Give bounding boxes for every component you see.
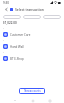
- staticText: Customer Care: [10, 33, 31, 37]
- button[interactable]: Customer Care: [0, 30, 64, 39]
- button[interactable]: Home: [30, 98, 35, 103]
- staticText: 9:30: [3, 1, 9, 5]
- staticText: $1,022.00: [3, 21, 17, 25]
- staticText: BT E-Shop: [10, 57, 24, 61]
- button[interactable]: Recent apps: [47, 98, 52, 103]
- staticText: •: [3, 51, 4, 54]
- button[interactable]: Newaccounts: [19, 88, 45, 94]
- button[interactable]: Describe: [23, 15, 41, 19]
- button[interactable]: Back: [3, 6, 9, 12]
- staticText: •: [3, 27, 4, 30]
- staticText: Services: [7, 16, 17, 19]
- staticText: Hand Wall: [10, 45, 24, 49]
- staticText: Describe: [27, 16, 37, 19]
- button[interactable]: BT E-Shop: [0, 54, 64, 63]
- staticText: Orders: [48, 16, 56, 19]
- staticText: •: [3, 39, 4, 42]
- button[interactable]: Services: [3, 15, 21, 19]
- button[interactable]: Back: [12, 98, 17, 103]
- staticText: Newaccounts: [24, 89, 41, 93]
- staticText: Select transaction: [15, 7, 44, 12]
- button[interactable]: Orders: [43, 15, 61, 19]
- button[interactable]: Hand Wall: [0, 42, 64, 51]
